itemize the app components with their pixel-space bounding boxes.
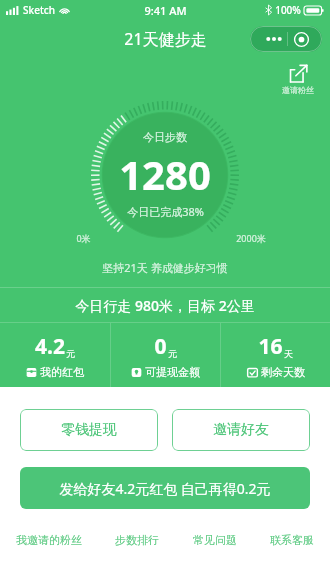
staticText: 我的红包 [40, 365, 84, 379]
button[interactable]: 0 [111, 323, 220, 387]
button[interactable]: 零钱提现 [20, 409, 158, 451]
staticText: 今日行走 980米，目标 2公里 [75, 296, 255, 315]
staticText: 0米 [76, 232, 91, 244]
button[interactable]: 16 [221, 323, 330, 387]
staticText: 邀请粉丝 [282, 85, 314, 95]
staticText: 坚持21天 养成健步好习惯 [102, 260, 228, 275]
staticText: 今日步数 [143, 130, 187, 144]
staticText: 天 [284, 348, 293, 359]
button[interactable]: 常见问题 [191, 529, 239, 551]
staticText: 可提现金额 [145, 365, 200, 379]
staticText: 9:41 AM [144, 3, 187, 18]
button[interactable]: 联系客服 [268, 529, 316, 551]
staticText: 联系客服 [270, 533, 314, 547]
staticText: 元 [168, 348, 177, 359]
staticText: 邀请好友 [213, 421, 269, 439]
staticText: 今日已完成38% [127, 204, 204, 219]
staticText: 0 [154, 332, 167, 361]
staticText: 2000米 [236, 232, 266, 244]
button[interactable]: 步数排行 [113, 529, 161, 551]
button[interactable]: 4.2 [0, 323, 110, 387]
staticText: 我邀请的粉丝 [16, 533, 82, 547]
button[interactable]: 发给好友4.2元红包 自己再得0.2元 [20, 467, 310, 509]
staticText: 剩余天数 [261, 365, 305, 379]
button[interactable]: 邀请好友 [172, 409, 310, 451]
staticText: 零钱提现 [61, 421, 117, 439]
staticText: 100% [275, 3, 301, 17]
staticText: 4.2 [35, 332, 65, 361]
staticText: 发给好友4.2元红包 自己再得0.2元 [59, 479, 271, 498]
staticText: 步数排行 [115, 533, 159, 547]
staticText: 16 [258, 332, 283, 361]
staticText: 元 [66, 348, 75, 359]
button[interactable]: 邀请粉丝 Invite fans [280, 64, 316, 95]
staticText: 1280 [119, 147, 211, 201]
staticText: Sketch [23, 3, 55, 17]
staticText: 21天健步走 [124, 28, 207, 50]
button[interactable]: Mini program menu [250, 26, 322, 52]
button[interactable]: 我邀请的粉丝 [14, 529, 84, 551]
staticText: 常见问题 [193, 533, 237, 547]
